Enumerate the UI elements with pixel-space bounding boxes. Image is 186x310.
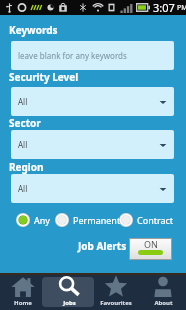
button[interactable]: Favourites [92,273,139,310]
staticText: All [18,139,28,150]
staticText: Keywords [9,23,58,37]
staticText: Jobs [63,299,76,307]
button[interactable]: Any [16,211,50,229]
staticText: Region [9,160,44,174]
button[interactable]: All [11,87,174,116]
button[interactable]: Permanent [55,211,121,229]
button[interactable]: About [139,273,186,310]
button[interactable]: Contract [119,211,174,229]
button[interactable]: Jobs [46,273,92,310]
staticText: Contract [137,214,174,226]
staticText: PM [177,3,186,13]
staticText: ON [144,238,158,250]
button[interactable]: ON [129,238,172,260]
staticText: Permanent [73,214,121,226]
staticText: All [18,96,28,107]
staticText: Favourites [100,299,132,307]
staticText: Job Alerts [78,239,127,253]
staticText: 3:07 [153,0,175,15]
staticText: Sector [9,116,41,130]
staticText: Any [34,214,50,226]
staticText: Security Level [9,70,79,84]
button[interactable]: All [11,130,174,159]
staticText: leave blank for any keywords [18,50,127,61]
button[interactable]: Home [0,273,46,310]
button[interactable]: leave blank for any keywords [11,41,174,70]
staticText: Home [14,299,32,307]
button[interactable]: All [11,174,174,203]
staticText: About [154,299,173,307]
staticText: All [18,183,28,194]
